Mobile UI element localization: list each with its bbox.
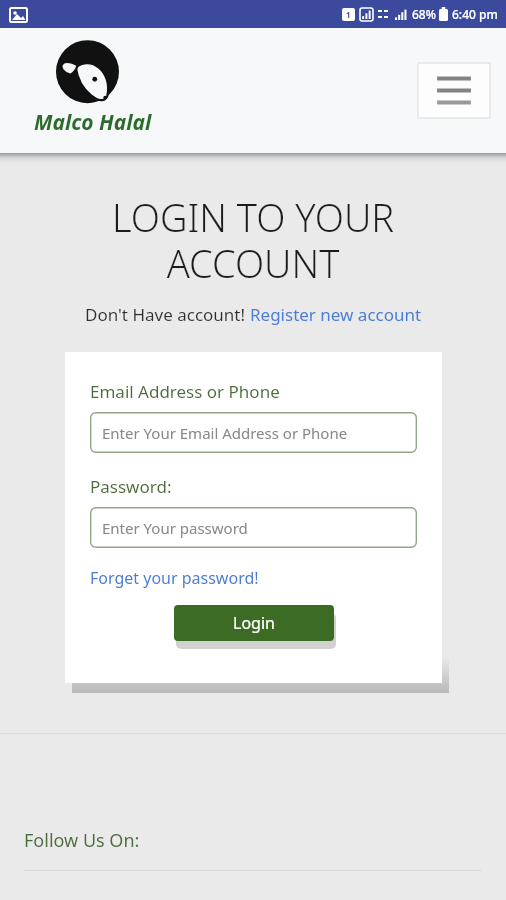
button[interactable]: Enter Your Email Address or Phone [90, 412, 417, 453]
staticText: Password: [90, 475, 172, 498]
staticText: Enter Your Email Address or Phone [102, 423, 348, 443]
staticText: 68% [412, 6, 436, 22]
button[interactable]: Enter Your password [90, 507, 417, 548]
button[interactable]: Forget your password! [90, 567, 259, 589]
button[interactable]: Register new account [250, 303, 422, 326]
button[interactable]: Login [174, 605, 334, 641]
staticText: Follow Us On: [24, 828, 140, 853]
staticText: Login [233, 612, 275, 634]
staticText: 6:40 pm [452, 6, 498, 22]
staticText: Register new account [250, 303, 422, 326]
staticText: Email Address or Phone [90, 380, 280, 403]
button[interactable]: Menu [418, 63, 490, 118]
staticText: Enter Your password [102, 518, 248, 538]
staticText: Malco Halal [34, 108, 152, 137]
staticText: LOGIN TO YOUR ACCOUNT [16, 191, 490, 289]
staticText: Don't Have account! [85, 303, 250, 326]
staticText: 1 [346, 9, 351, 20]
staticText: Forget your password! [90, 567, 259, 589]
